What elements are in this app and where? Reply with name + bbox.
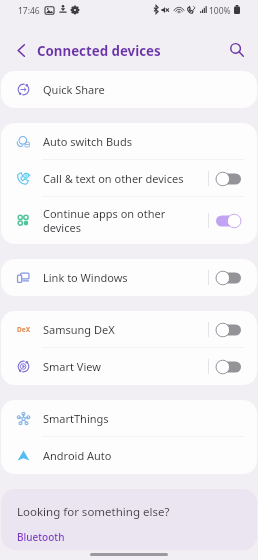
button[interactable]: Off (216, 322, 241, 338)
staticText: Connected devices (37, 42, 161, 60)
staticText: SmartThings (43, 411, 249, 426)
staticText: DeX (17, 325, 30, 334)
staticText: Looking for something else? (17, 504, 170, 520)
staticText: Auto switch Buds (43, 134, 249, 149)
button[interactable]: Off (216, 270, 241, 286)
button[interactable]: Off (216, 359, 241, 375)
button[interactable]: Search (227, 40, 247, 60)
button[interactable]: Smart View (1, 348, 257, 385)
staticText: Bluetooth (17, 530, 65, 544)
button[interactable]: Off (216, 171, 241, 187)
button[interactable]: On (216, 213, 241, 229)
staticText: Android Auto (43, 448, 249, 463)
staticText: Quick Share (43, 82, 249, 97)
staticText: Smart View (43, 359, 200, 374)
button[interactable]: Bluetooth (17, 530, 65, 544)
staticText: Link to Windows (43, 270, 200, 285)
button[interactable]: SmartThings (1, 400, 257, 437)
staticText: 100% (209, 5, 231, 17)
staticText: 17:46 (18, 5, 40, 17)
button[interactable]: Auto switch Buds (1, 123, 257, 160)
button[interactable]: Call & text on other devices (1, 160, 257, 197)
button[interactable]: Quick Share (1, 71, 257, 108)
staticText: Call & text on other devices (43, 171, 200, 186)
button[interactable]: Link to Windows (1, 259, 257, 296)
button[interactable]: Back (12, 42, 30, 58)
button[interactable]: Android Auto (1, 437, 257, 474)
button[interactable]: DeX (1, 311, 257, 348)
button[interactable]: Continue apps on other devices (1, 197, 257, 244)
staticText: Samsung DeX (43, 322, 200, 337)
staticText: Continue apps on other devices (43, 206, 200, 235)
